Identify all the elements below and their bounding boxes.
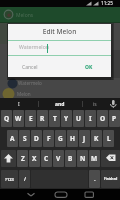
button[interactable]: V xyxy=(53,150,64,167)
button[interactable]: M xyxy=(89,150,100,167)
staticText: D xyxy=(34,134,39,143)
button[interactable]: L xyxy=(103,130,114,147)
button[interactable] xyxy=(106,98,120,110)
button[interactable]: Y xyxy=(61,110,72,127)
staticText: Watermelo xyxy=(18,80,42,86)
staticText: U xyxy=(76,114,81,123)
button[interactable]: B xyxy=(65,150,76,167)
staticText: P xyxy=(112,114,117,123)
button[interactable]: R xyxy=(37,110,48,127)
button[interactable]: A xyxy=(7,130,18,147)
button[interactable]: G xyxy=(55,130,66,147)
button[interactable]: I xyxy=(8,98,30,110)
staticText: Q xyxy=(4,114,10,123)
staticText: K xyxy=(94,134,99,143)
staticText: Watermelon xyxy=(19,43,50,50)
button[interactable]: ?123 xyxy=(1,170,18,188)
staticText: is xyxy=(93,101,97,108)
button[interactable]: Z xyxy=(17,150,28,167)
button[interactable]: Q xyxy=(1,110,12,127)
staticText: O xyxy=(100,114,106,123)
staticText: H xyxy=(70,134,75,143)
button[interactable] xyxy=(50,189,70,200)
staticText: J xyxy=(83,134,86,143)
staticText: Melons xyxy=(16,12,34,19)
staticText: X xyxy=(32,154,37,163)
button[interactable]: E xyxy=(25,110,36,127)
button[interactable]: P xyxy=(109,110,120,127)
staticText: I xyxy=(89,114,92,123)
button[interactable]: F xyxy=(43,130,54,147)
button[interactable]: . xyxy=(89,170,100,188)
button[interactable] xyxy=(0,7,120,23)
staticText: F xyxy=(47,134,51,143)
button[interactable] xyxy=(101,150,120,167)
staticText: Y xyxy=(64,114,69,123)
staticText: R xyxy=(40,114,45,123)
staticText: . xyxy=(94,175,96,183)
button[interactable]: I xyxy=(85,110,96,127)
button[interactable] xyxy=(80,189,100,200)
staticText: ?123 xyxy=(5,177,14,182)
staticText: Z xyxy=(21,154,25,163)
staticText: G xyxy=(58,134,63,143)
staticText: / xyxy=(24,176,26,183)
staticText: W xyxy=(15,114,22,123)
staticText: 11:25 xyxy=(101,0,113,6)
button[interactable]: and xyxy=(46,98,74,110)
staticText: N xyxy=(80,154,86,163)
staticText: T xyxy=(53,114,57,123)
staticText: S xyxy=(23,134,27,143)
staticText: Edit Melon xyxy=(8,27,111,36)
staticText: C xyxy=(44,154,49,163)
button[interactable]: T xyxy=(49,110,60,127)
button[interactable]: J xyxy=(79,130,90,147)
button[interactable]: Cancel xyxy=(14,60,46,75)
button[interactable]: / xyxy=(19,170,30,188)
staticText: Melon xyxy=(17,91,31,97)
button[interactable]: S xyxy=(19,130,30,147)
button[interactable]: is xyxy=(86,98,104,110)
button[interactable]: W xyxy=(13,110,24,127)
button[interactable]: K xyxy=(91,130,102,147)
button[interactable] xyxy=(1,150,16,167)
button[interactable]: Finished xyxy=(101,170,120,188)
staticText: and xyxy=(55,101,65,108)
button[interactable]: D xyxy=(31,130,42,147)
button[interactable]: H xyxy=(67,130,78,147)
staticText: L xyxy=(107,134,111,143)
button[interactable]: OK xyxy=(76,60,101,75)
button[interactable]: O xyxy=(97,110,108,127)
staticText: OK xyxy=(85,64,93,71)
button[interactable] xyxy=(22,189,42,200)
button[interactable]: N xyxy=(77,150,88,167)
staticText: V xyxy=(56,154,61,163)
staticText: Finished xyxy=(104,177,118,181)
staticText: M xyxy=(91,154,98,163)
staticText: I xyxy=(18,101,20,108)
staticText: Cancel xyxy=(22,64,38,71)
staticText: B xyxy=(68,154,73,163)
button[interactable]: C xyxy=(41,150,52,167)
staticText: A xyxy=(10,134,15,143)
staticText: E xyxy=(29,114,33,123)
button[interactable]: U xyxy=(73,110,84,127)
button[interactable]: X xyxy=(29,150,40,167)
